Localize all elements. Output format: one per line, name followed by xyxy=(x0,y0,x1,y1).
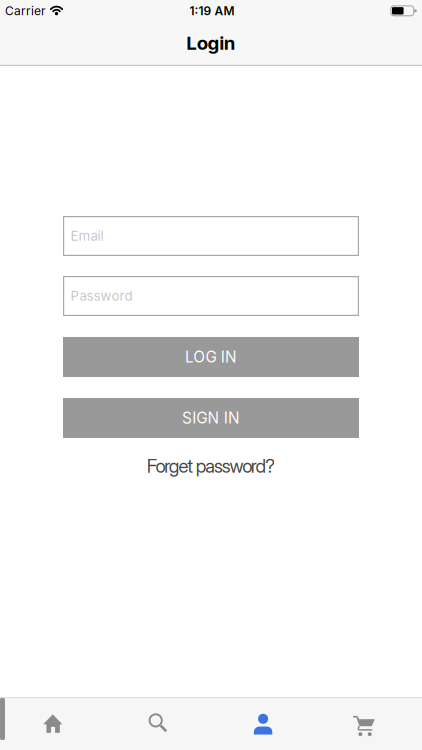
button[interactable]: Profile xyxy=(211,698,316,750)
staticText: SIGN IN xyxy=(182,409,240,427)
staticText: Password xyxy=(70,288,132,304)
button[interactable]: Cart xyxy=(317,698,422,750)
button[interactable]: SIGN IN xyxy=(63,398,359,438)
staticText: LOG IN xyxy=(185,348,237,366)
staticText: Login xyxy=(186,32,236,54)
staticText: Email xyxy=(70,228,103,244)
button[interactable]: LOG IN xyxy=(63,337,359,377)
staticText: 1:19 AM xyxy=(189,4,234,18)
button[interactable]: Search xyxy=(106,698,211,750)
button[interactable]: Email xyxy=(63,216,359,256)
button[interactable]: Forget password? xyxy=(147,455,275,477)
button[interactable]: Password xyxy=(63,276,359,316)
button[interactable]: Home xyxy=(0,698,105,750)
staticText: Forget password? xyxy=(147,455,275,477)
staticText: Carrier xyxy=(5,4,46,18)
